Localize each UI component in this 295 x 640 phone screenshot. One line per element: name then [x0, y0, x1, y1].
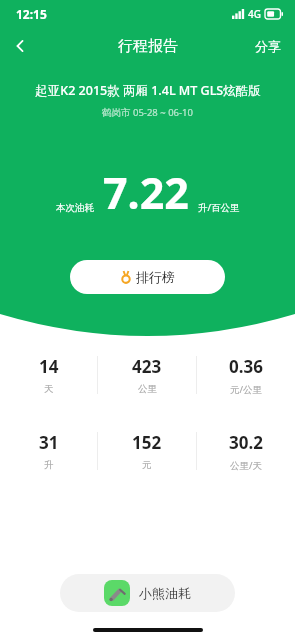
button[interactable]: 分享 — [241, 32, 295, 60]
staticText: 公里 — [138, 383, 157, 395]
staticText: 本次油耗 — [56, 202, 94, 214]
button[interactable]: 排行榜 — [70, 260, 225, 294]
staticText: 升/百公里 — [198, 201, 240, 214]
staticText: 30.2 — [229, 431, 263, 454]
button[interactable]: 小熊油耗 — [60, 574, 235, 612]
staticText: 排行榜 — [136, 269, 175, 285]
button[interactable]: Back — [0, 28, 40, 64]
staticText: 423 — [132, 355, 162, 378]
staticText: 14 — [39, 355, 59, 378]
staticText: 行程报告 — [118, 37, 178, 56]
staticText: 元/公里 — [230, 383, 263, 396]
staticText: 0.36 — [229, 355, 263, 378]
staticText: 升 — [44, 459, 54, 471]
staticText: 起亚K2 2015款 两厢 1.4L MT GLS炫酷版 — [35, 82, 261, 99]
staticText: 4G — [248, 7, 261, 21]
staticText: 12:15 — [16, 6, 47, 22]
staticText: 152 — [132, 431, 162, 454]
staticText: 天 — [44, 383, 54, 395]
staticText: 7.22 — [103, 163, 189, 222]
staticText: 鹤岗市 05-28 ~ 06-10 — [102, 106, 193, 119]
staticText: 31 — [39, 431, 59, 454]
staticText: 分享 — [255, 38, 281, 54]
staticText: 小熊油耗 — [139, 585, 191, 601]
staticText: 公里/天 — [230, 459, 263, 472]
staticText: 元 — [142, 459, 152, 471]
